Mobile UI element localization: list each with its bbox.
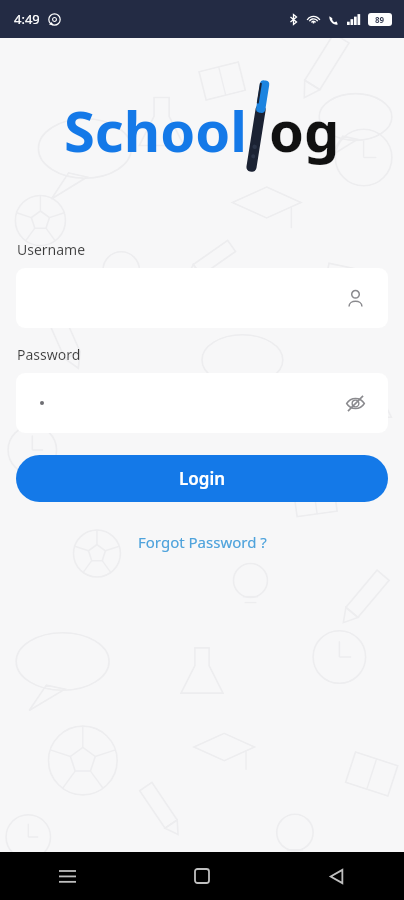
button[interactable]: Back — [269, 852, 404, 900]
staticText: Forgot Password ? — [138, 532, 267, 552]
staticText: 89 — [375, 14, 385, 25]
staticText: og — [269, 92, 340, 168]
button[interactable]: Login — [16, 455, 388, 502]
button[interactable]: Recent apps — [0, 852, 134, 900]
button[interactable]: Forgot Password ? — [0, 532, 404, 552]
staticText: Username — [17, 240, 86, 259]
button[interactable]: Username — [340, 283, 370, 313]
staticText: 4:49 — [14, 10, 40, 28]
staticText: School — [64, 92, 247, 168]
button[interactable]: Show password — [16, 373, 388, 433]
button[interactable]: Show password — [340, 388, 370, 418]
button[interactable]: Home — [134, 852, 269, 900]
button[interactable]: Username — [16, 268, 388, 328]
staticText: Password — [17, 345, 81, 364]
staticText: Login — [179, 467, 226, 490]
